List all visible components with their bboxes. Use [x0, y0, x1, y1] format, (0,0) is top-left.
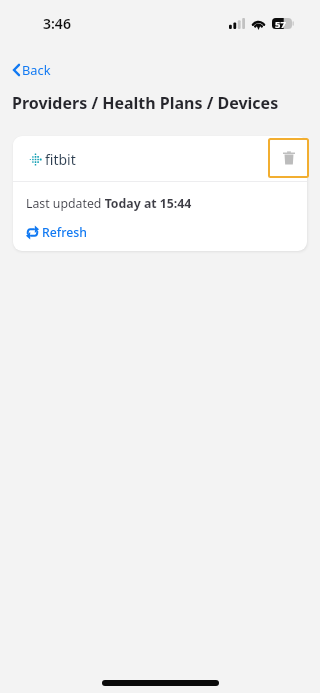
staticText: 3:46	[43, 14, 71, 33]
staticText: Providers / Health Plans / Devices	[12, 92, 279, 114]
staticText: Refresh	[42, 224, 87, 241]
staticText: Last updated Today at 15:44	[26, 195, 192, 212]
staticText: Back	[22, 61, 51, 78]
staticText: 57	[275, 18, 286, 29]
staticText: fitbit	[45, 150, 76, 169]
button[interactable]: Delete	[268, 138, 309, 178]
button[interactable]: Refresh	[24, 222, 89, 243]
button[interactable]: Back	[9, 58, 55, 81]
